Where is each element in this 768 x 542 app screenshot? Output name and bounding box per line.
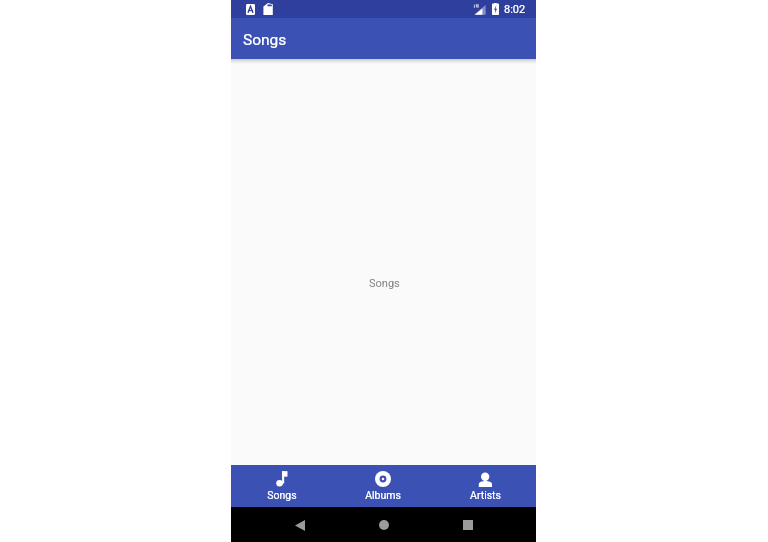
button[interactable]: Recent apps [453,510,483,540]
staticText: Songs [243,31,287,49]
staticText: Songs [369,277,400,290]
staticText: 8:02 [504,3,526,16]
button[interactable]: Artists [434,465,536,507]
button[interactable]: Back [285,510,315,540]
staticText: Artists [470,489,501,501]
button[interactable]: Albums [332,465,434,507]
button[interactable]: Home [369,510,399,540]
button[interactable]: Songs [231,465,332,507]
staticText: Songs [267,489,297,501]
button[interactable]: Songs [231,18,536,59]
staticText: Albums [365,489,401,501]
